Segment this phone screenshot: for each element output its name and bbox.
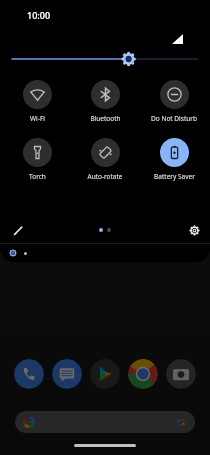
button[interactable]: Bluetooth xyxy=(73,80,137,123)
button[interactable]: Settings xyxy=(184,220,204,240)
button[interactable]: Battery Saver xyxy=(142,138,206,181)
button[interactable]: Messages xyxy=(52,359,82,389)
button[interactable]: Play Store xyxy=(90,359,120,389)
staticText: Wi-Fi xyxy=(30,114,45,123)
staticText: Battery Saver xyxy=(154,172,195,181)
button[interactable]: Camera xyxy=(166,359,196,389)
button[interactable] xyxy=(15,411,195,433)
button[interactable]: Phone xyxy=(14,359,44,389)
button[interactable]: Edit tiles xyxy=(8,220,28,240)
staticText: 10:00 xyxy=(27,9,51,21)
button[interactable]: Wi-Fi xyxy=(5,80,69,123)
staticText: Auto-rotate xyxy=(87,172,123,181)
button[interactable]: Do Not Disturb xyxy=(142,80,206,123)
button[interactable] xyxy=(0,244,210,262)
staticText: Bluetooth xyxy=(90,114,121,123)
button[interactable]: Torch xyxy=(5,138,69,181)
staticText: Torch xyxy=(29,172,46,181)
button[interactable]: Auto-rotate xyxy=(73,138,137,181)
button[interactable]: Chrome xyxy=(128,359,158,389)
button[interactable] xyxy=(12,48,198,70)
staticText: Do Not Disturb xyxy=(151,114,197,123)
